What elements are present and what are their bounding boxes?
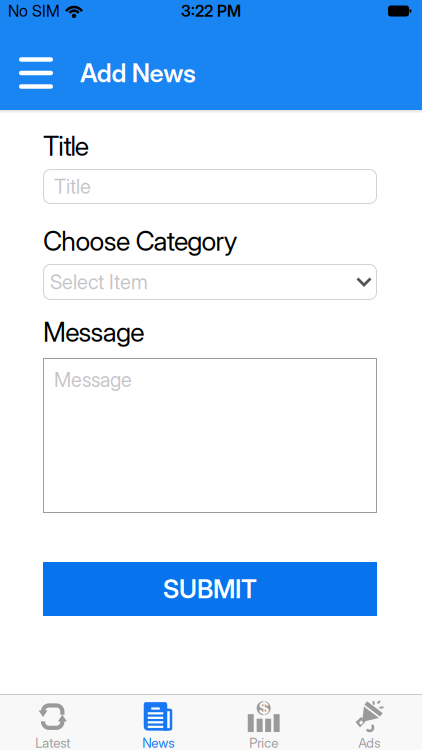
- staticText: Latest: [35, 735, 70, 750]
- button[interactable]: News: [105, 695, 211, 750]
- staticText: $: [259, 699, 269, 718]
- staticText: Add News: [80, 58, 196, 88]
- staticText: Price: [249, 735, 278, 750]
- staticText: SUBMIT: [163, 574, 257, 604]
- button[interactable]: $: [211, 695, 316, 750]
- staticText: Ads: [358, 735, 380, 750]
- button[interactable]: Select Item: [43, 264, 377, 300]
- staticText: No SIM: [8, 2, 60, 20]
- button[interactable]: SUBMIT: [43, 562, 377, 616]
- staticText: News: [142, 735, 174, 750]
- staticText: Title: [43, 130, 89, 162]
- button[interactable]: Latest: [0, 695, 105, 750]
- staticText: Select Item: [50, 270, 148, 294]
- button[interactable]: Ads: [316, 695, 422, 750]
- staticText: Title: [54, 175, 91, 198]
- staticText: Choose Category: [43, 225, 238, 257]
- staticText: 3:22 PM: [181, 2, 241, 20]
- staticText: Message: [43, 316, 144, 348]
- button[interactable]: Menu: [0, 57, 53, 88]
- staticText: Message: [54, 368, 132, 392]
